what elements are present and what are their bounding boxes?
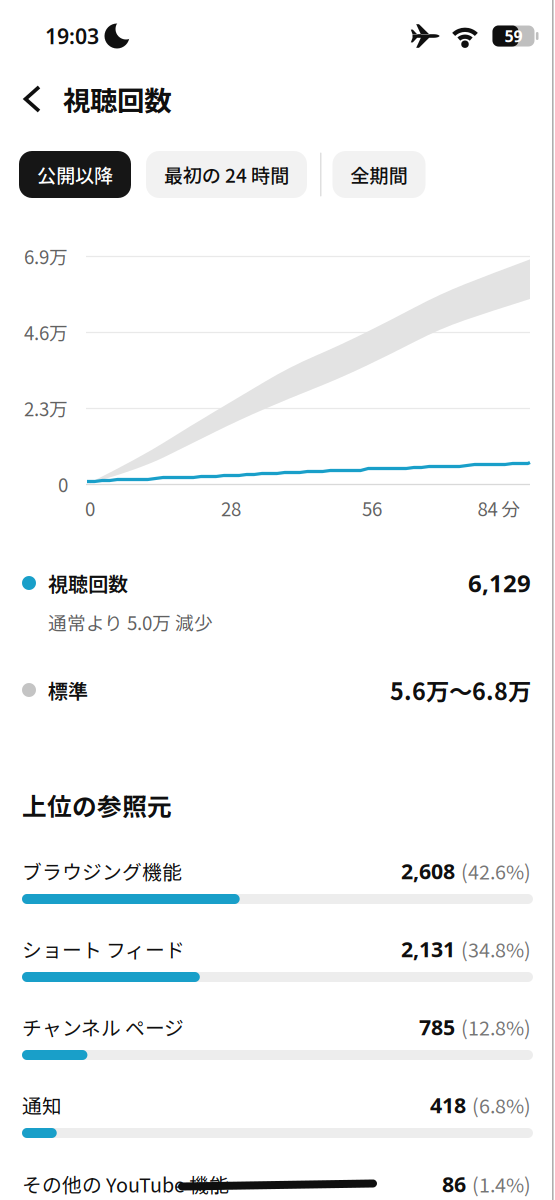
staticText: 通常より 5.0万 減少 xyxy=(48,608,213,635)
button[interactable]: Back xyxy=(22,85,46,113)
staticText: 2.3万 xyxy=(24,394,68,421)
staticText: 5.6万〜6.8万 xyxy=(390,673,531,707)
staticText: 4.6万 xyxy=(24,318,68,345)
staticText: (42.6%) xyxy=(461,857,531,885)
staticText: 6.9万 xyxy=(24,242,68,269)
staticText: 2,608 xyxy=(401,857,455,885)
staticText: 28 xyxy=(221,494,241,521)
button[interactable]: 標準 xyxy=(0,673,555,707)
staticText: 標準 xyxy=(48,675,88,704)
staticText: 上位の参照元 xyxy=(22,787,172,823)
staticText: (6.8%) xyxy=(472,1091,531,1119)
button[interactable]: 全期間 xyxy=(332,151,425,198)
staticText: ブラウジング機能 xyxy=(22,857,182,885)
staticText: 785 xyxy=(419,1013,455,1041)
staticText: (12.8%) xyxy=(461,1013,531,1041)
staticText: 418 xyxy=(430,1091,466,1119)
staticText: 最初の 24 時間 xyxy=(164,161,289,188)
button[interactable]: 公開以降 xyxy=(19,151,131,198)
staticText: チャンネル ページ xyxy=(22,1013,184,1041)
staticText: 全期間 xyxy=(350,161,407,188)
staticText: 視聴回数 xyxy=(63,79,171,119)
staticText: 59 xyxy=(504,25,522,47)
staticText: 6,129 xyxy=(468,567,531,599)
staticText: 2,131 xyxy=(401,935,455,963)
button[interactable]: 最初の 24 時間 xyxy=(146,151,307,198)
staticText: 視聴回数 xyxy=(48,568,128,597)
staticText: 19:03 xyxy=(45,22,99,50)
staticText: 0 xyxy=(85,494,95,521)
staticText: 86 xyxy=(442,1170,466,1198)
staticText: (34.8%) xyxy=(461,935,531,963)
staticText: 0 xyxy=(58,470,68,497)
staticText: 56 xyxy=(362,494,382,521)
staticText: 公開以降 xyxy=(37,161,113,188)
staticText: (1.4%) xyxy=(472,1170,531,1198)
button[interactable]: 視聴回数 xyxy=(0,567,555,599)
staticText: 84 分 xyxy=(477,494,520,521)
staticText: その他の YouTube 機能 xyxy=(22,1170,229,1198)
staticText: ショート フィード xyxy=(22,935,185,963)
staticText: 通知 xyxy=(22,1091,62,1119)
